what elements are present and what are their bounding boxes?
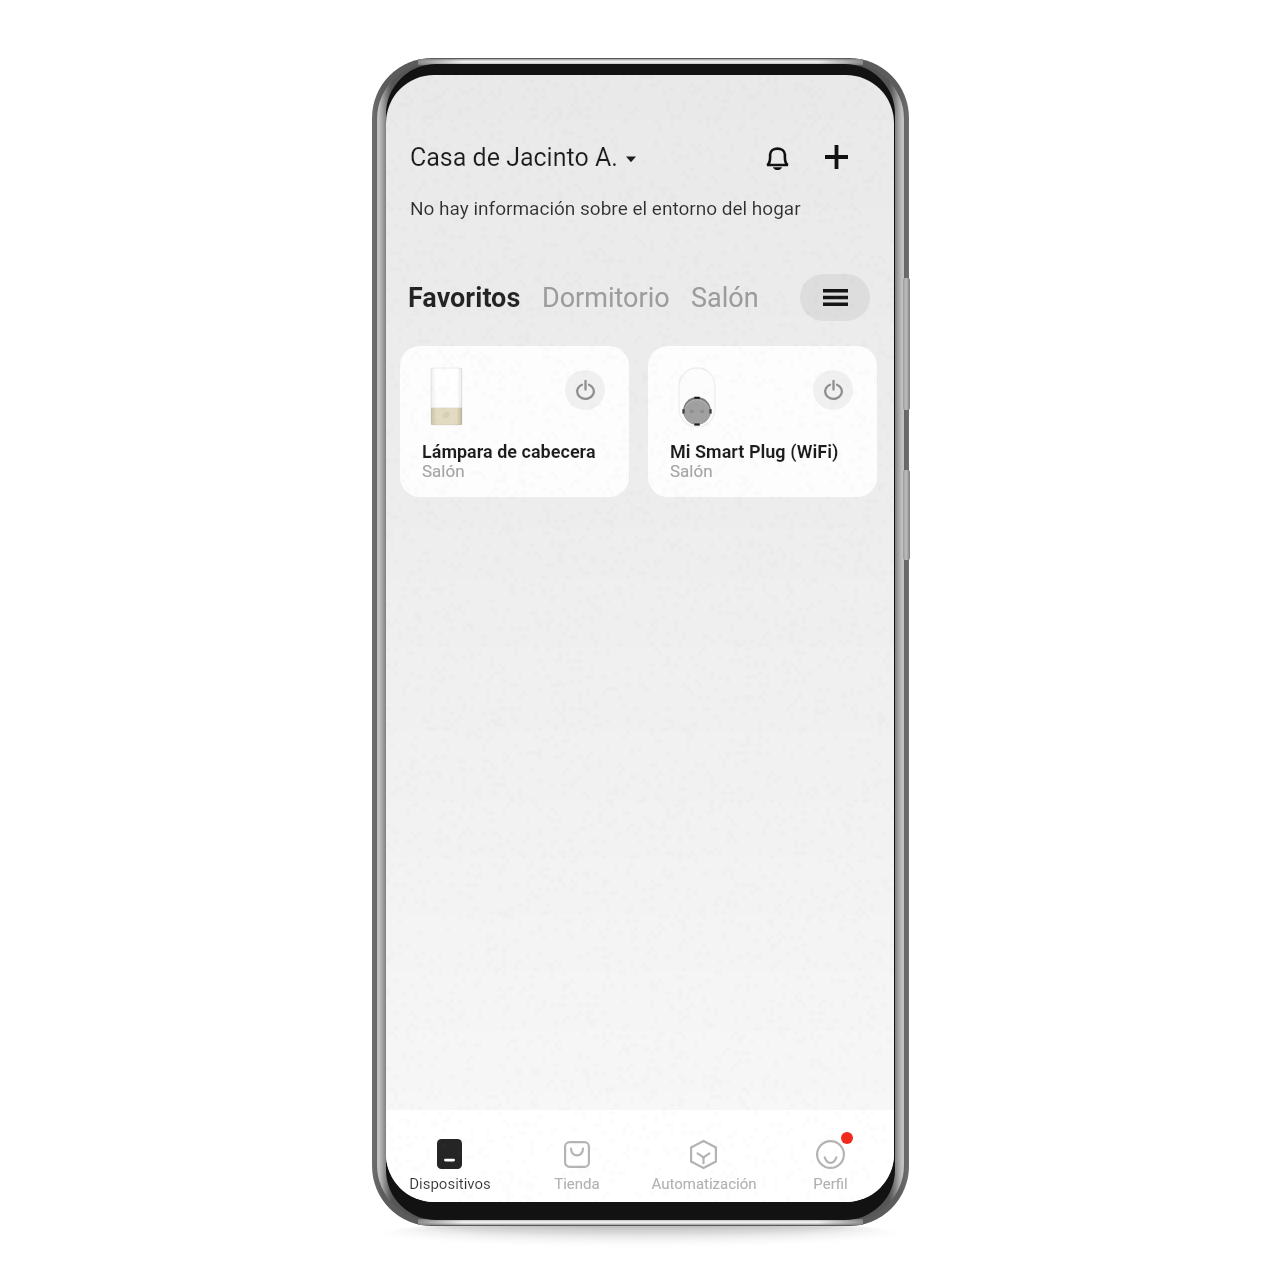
button[interactable]: Tienda bbox=[513, 1110, 640, 1202]
button[interactable]: Favoritos bbox=[408, 269, 521, 327]
button[interactable]: Power toggle bbox=[813, 370, 853, 410]
button[interactable]: Automatización bbox=[640, 1110, 767, 1202]
button[interactable]: Power toggle bbox=[565, 370, 605, 410]
button[interactable]: Dormitorio bbox=[542, 269, 670, 327]
staticText: Favoritos bbox=[408, 282, 521, 314]
staticText: Dispositivos bbox=[409, 1175, 491, 1193]
button[interactable]: Casa de Jacinto A. bbox=[410, 136, 636, 178]
button[interactable]: Power toggle bbox=[648, 346, 877, 497]
button[interactable]: Notifications bbox=[757, 137, 797, 177]
staticText: Tienda bbox=[554, 1175, 600, 1193]
button[interactable]: Menu bbox=[800, 274, 870, 321]
button[interactable]: Power toggle bbox=[400, 346, 629, 497]
staticText: Salón bbox=[691, 282, 759, 314]
button[interactable]: Perfil bbox=[767, 1110, 894, 1202]
staticText: Lámpara de cabecera bbox=[422, 441, 596, 462]
button[interactable]: Salón bbox=[691, 269, 759, 327]
staticText: Salón bbox=[422, 461, 465, 481]
staticText: Casa de Jacinto A. bbox=[410, 143, 618, 172]
button[interactable]: Add device bbox=[816, 137, 856, 177]
staticText: Salón bbox=[670, 461, 713, 481]
staticText: Automatización bbox=[651, 1175, 757, 1193]
button[interactable]: Dispositivos bbox=[386, 1110, 513, 1202]
staticText: Perfil bbox=[813, 1175, 848, 1193]
staticText: Dormitorio bbox=[542, 282, 670, 314]
staticText: Mi Smart Plug (WiFi) bbox=[670, 441, 839, 462]
staticText: No hay información sobre el entorno del … bbox=[410, 197, 801, 219]
